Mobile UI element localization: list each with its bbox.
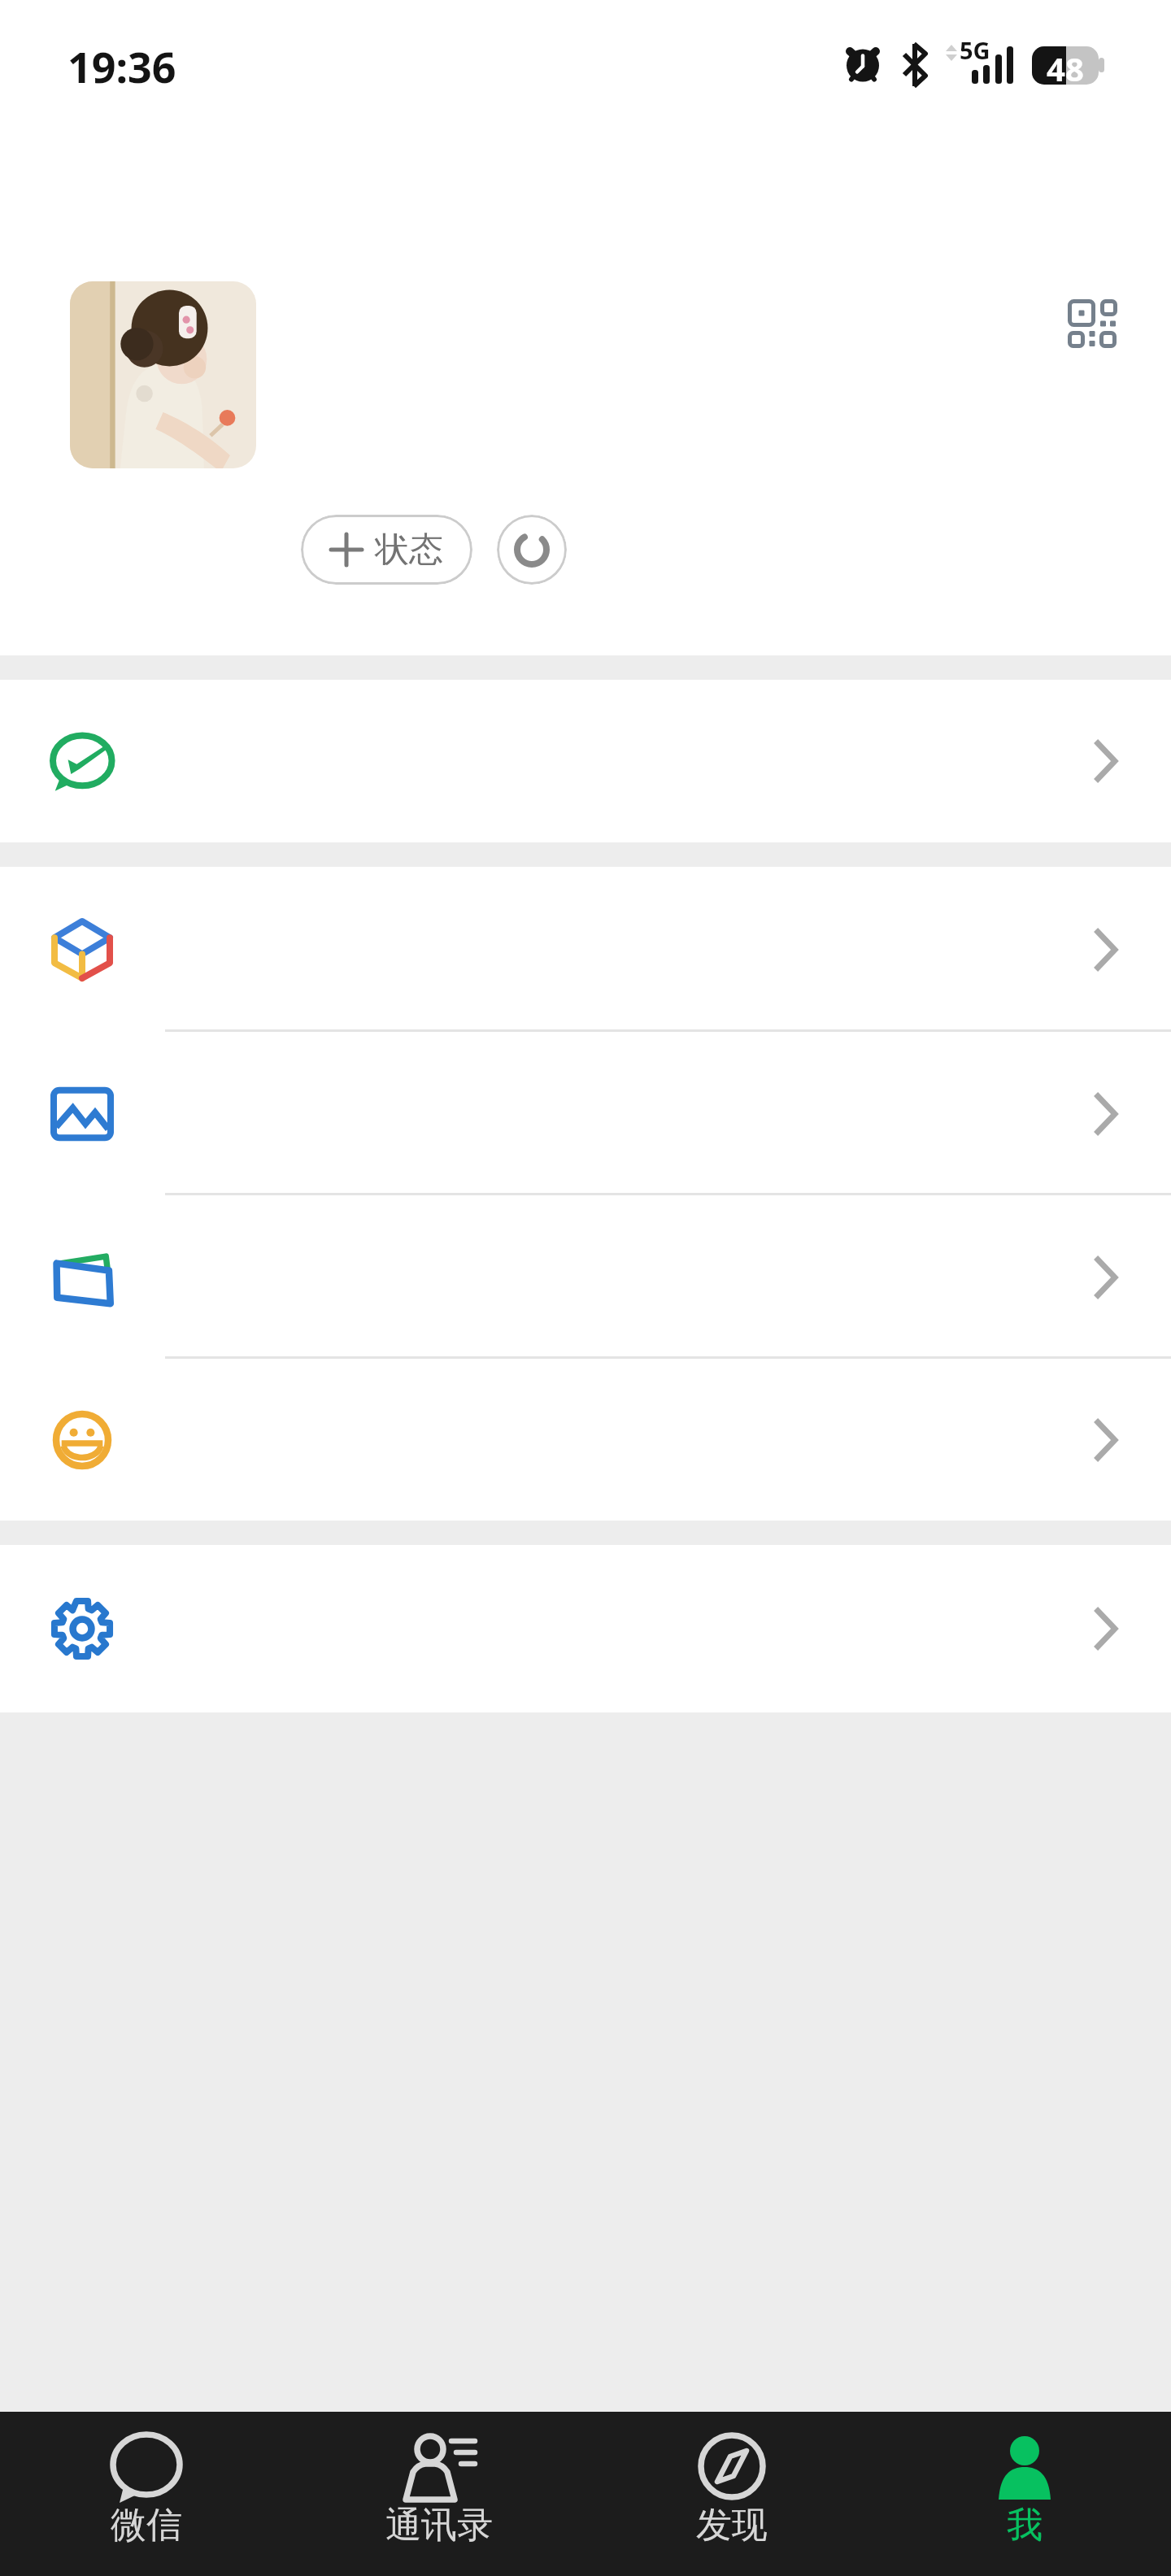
staticText: 5G <box>960 34 990 66</box>
button[interactable] <box>70 281 256 468</box>
staticText: 48 <box>1047 46 1084 85</box>
button[interactable] <box>0 1359 1171 1521</box>
staticText: 发现 <box>696 2503 768 2548</box>
staticText: 19:36 <box>67 37 176 95</box>
button[interactable] <box>0 1545 1171 1712</box>
staticText: 我 <box>1007 2503 1043 2548</box>
button[interactable] <box>0 867 1171 1032</box>
button[interactable] <box>497 515 567 585</box>
button[interactable]: 发现 <box>585 2412 878 2576</box>
button[interactable] <box>0 1195 1171 1359</box>
button[interactable] <box>0 680 1171 842</box>
staticText: 微信 <box>111 2503 182 2548</box>
staticText: 状态 <box>375 529 443 572</box>
staticText: 通讯录 <box>385 2503 493 2548</box>
button[interactable] <box>0 1032 1171 1195</box>
button[interactable]: 状态 <box>301 515 472 585</box>
button[interactable] <box>1058 289 1126 358</box>
button[interactable]: 微信 <box>0 2412 293 2576</box>
button[interactable]: 我 <box>878 2412 1171 2576</box>
button[interactable]: 通讯录 <box>293 2412 585 2576</box>
